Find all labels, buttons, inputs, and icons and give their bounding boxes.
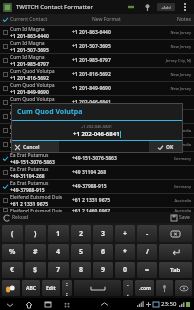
button[interactable]: 2: [71, 225, 91, 242]
button[interactable]: ABC: [22, 280, 40, 296]
staticText: +49-37988-915: [72, 183, 147, 190]
button[interactable]: *: [115, 244, 135, 260]
button[interactable]: ): [25, 225, 46, 242]
staticText: Germany: [173, 156, 191, 161]
button[interactable]: Save: [169, 212, 192, 223]
button[interactable]: $: [25, 262, 46, 278]
staticText: +1 202-046-6841: [72, 99, 147, 106]
button[interactable]: Input method: [2, 280, 20, 296]
button[interactable]: #: [25, 244, 46, 260]
button[interactable]: 7: [48, 262, 69, 278]
button[interactable]: 4: [48, 244, 69, 260]
button[interactable]: Link: [125, 1, 137, 13]
staticText: Dignissim Fa Nostrum: [10, 138, 63, 145]
staticText: Eleifend Euismod Duis: [10, 194, 63, 201]
button[interactable]: Eleifend Euismod Duis: [0, 194, 194, 208]
button[interactable]: 8: [71, 262, 91, 278]
button[interactable]: Search: [141, 1, 153, 13]
button[interactable]: 9: [93, 262, 113, 278]
staticText: +61 2 1460 0967: [72, 208, 147, 212]
button[interactable]: More options: [179, 1, 191, 13]
staticText: -: [146, 229, 149, 239]
button[interactable]: 1: [48, 225, 69, 242]
button[interactable]: Cum Id Magna: [0, 40, 194, 54]
button[interactable]: :: [62, 280, 72, 296]
button[interactable]: Space: [74, 280, 121, 296]
button[interactable]: Notifications: [98, 298, 110, 310]
button[interactable]: Cum Id Magna: [0, 54, 194, 68]
staticText: :: [66, 280, 68, 288]
button[interactable]: 5: [71, 244, 91, 260]
staticText: (: [11, 229, 14, 239]
button[interactable]: Cum Quod Volutpa: [0, 82, 194, 96]
staticText: Current Contact: [10, 16, 48, 23]
button[interactable]: +: [115, 225, 135, 242]
staticText: Dignissim Fa Nostrum: [10, 124, 63, 131]
button[interactable]: OK: [149, 141, 183, 153]
button[interactable]: Eleifend Euismod Duis: [0, 208, 194, 212]
button[interactable]: 0: [115, 262, 135, 278]
staticText: $: [33, 265, 38, 275]
button[interactable]: =: [137, 262, 157, 278]
staticText: €: [10, 265, 15, 275]
staticText: India: [181, 128, 191, 133]
button[interactable]: Cancel: [11, 141, 59, 153]
staticText: .com: [139, 285, 151, 292]
button[interactable]: €: [2, 262, 23, 278]
button[interactable]: Cum Quod Volutpa: [0, 68, 194, 82]
button[interactable]: Ea Erat Putamus: [0, 152, 194, 166]
staticText: Cum Id Magna: [10, 26, 45, 33]
button[interactable]: -: [137, 225, 157, 242]
button[interactable]: Cum Quod Volutpa: [0, 110, 194, 124]
button[interactable]: [159, 244, 192, 260]
staticText: Cum Quod Volutpa: [10, 110, 55, 117]
button[interactable]: Voice input: [156, 280, 173, 296]
staticText: =: [145, 265, 150, 275]
staticText: Save: [179, 214, 190, 221]
staticText: Reload: [12, 214, 29, 221]
button[interactable]: Tab: [159, 262, 192, 278]
staticText: Tab: [170, 266, 181, 274]
button[interactable]: (: [2, 225, 23, 242]
staticText: +1 201-849-9690: [10, 89, 49, 95]
button[interactable]: Dignissim Fa Nostrum: [0, 138, 194, 152]
staticText: Jersey City, NJ: [165, 58, 191, 63]
staticText: Ea Erat Putamus: [10, 152, 49, 159]
button[interactable]: 6: [93, 244, 113, 260]
button[interactable]: Hide keyboard: [175, 280, 192, 296]
button[interactable]: Edit: [42, 280, 60, 296]
button[interactable]: Cum Id Magna: [0, 26, 194, 40]
staticText: Cancel: [23, 144, 40, 151]
staticText: Cum Id Magna: [10, 40, 45, 47]
button[interactable]: Cum Quod Volutpa: [0, 96, 194, 110]
button[interactable]: Reload: [2, 212, 31, 223]
staticText: ABC: [26, 285, 36, 292]
staticText: 6: [101, 247, 106, 257]
button[interactable]: Ea Erat Putamus: [0, 166, 194, 180]
button[interactable]: Screenshot: [61, 299, 72, 310]
button[interactable]: [159, 225, 192, 242]
button[interactable]: +Add: [157, 3, 175, 11]
button[interactable]: 3: [93, 225, 113, 242]
staticText: /: [146, 247, 149, 257]
staticText: 8: [79, 265, 84, 275]
button[interactable]: Ea Erat Putamus: [0, 180, 194, 194]
button[interactable]: .com: [135, 280, 154, 296]
staticText: New Jersey: [170, 44, 191, 49]
staticText: Edit: [46, 285, 56, 292]
button[interactable]: Dignissim Fa Nostrum: [0, 124, 194, 138]
staticText: 0: [123, 265, 128, 275]
button[interactable]: .: [123, 280, 133, 296]
staticText: Eleifend Euismod Duis: [10, 208, 63, 212]
staticText: %: [9, 247, 16, 257]
staticText: 23:50: [161, 300, 177, 308]
button[interactable]: Home: [23, 299, 34, 310]
button[interactable]: %: [2, 244, 23, 260]
button[interactable]: Recents: [42, 299, 53, 310]
button[interactable]: /: [137, 244, 157, 260]
staticText: ;: [66, 290, 68, 296]
staticText: +1 202-046-6841: [10, 117, 49, 123]
staticText: +1 201-863-6440: [72, 29, 147, 36]
staticText: 7: [56, 265, 61, 275]
button[interactable]: Back: [4, 299, 15, 310]
